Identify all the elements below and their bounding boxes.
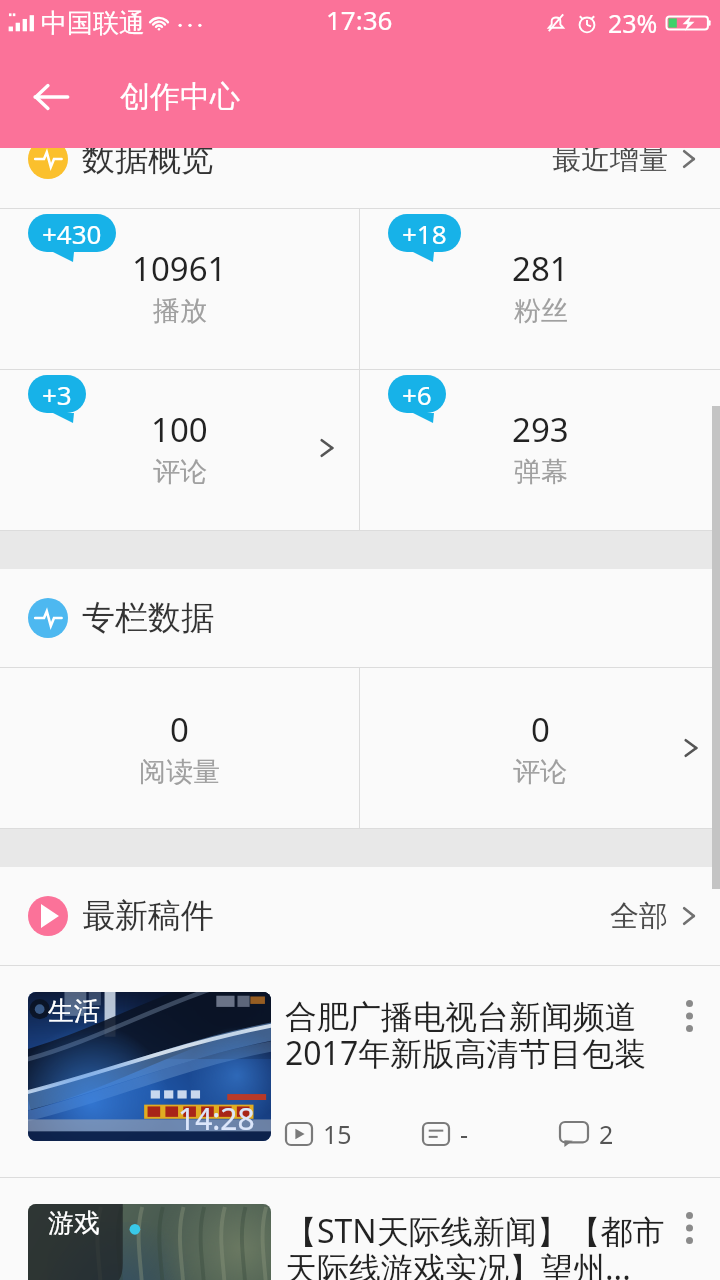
button[interactable]: 专栏数据	[0, 569, 720, 667]
staticText: +6	[402, 377, 432, 412]
staticText: 14:28	[178, 1098, 255, 1139]
staticText: +3	[42, 377, 72, 412]
button[interactable]: 游戏	[0, 1178, 720, 1280]
staticText: 0	[170, 707, 189, 752]
staticText: 合肥广播电视台新闻频道 2017年新版高清节目包装	[285, 997, 647, 1075]
staticText: 【STN天际线新闻】【都市 天际线游戏实况】望州...	[285, 1209, 665, 1280]
button[interactable]: More options	[672, 1204, 706, 1280]
button[interactable]: +430	[0, 209, 359, 369]
button[interactable]: +6	[360, 370, 720, 530]
staticText: 293	[512, 407, 569, 452]
staticText: 最近增量	[552, 141, 668, 178]
staticText: 创作中心	[120, 78, 240, 116]
staticText: 数据概览	[82, 138, 214, 180]
button[interactable]: 最新稿件	[0, 867, 720, 965]
staticText: 游戏	[48, 1207, 100, 1240]
button[interactable]: 0	[360, 668, 720, 828]
button[interactable]: 0	[0, 668, 359, 828]
staticText: -	[460, 1117, 469, 1151]
staticText: 粉丝	[514, 294, 568, 328]
button[interactable]: More options	[672, 992, 706, 1177]
staticText: 最新稿件	[82, 895, 214, 937]
staticText: 17:36	[326, 2, 393, 37]
button[interactable]: +18	[360, 209, 720, 369]
staticText: +18	[402, 216, 447, 251]
button[interactable]: Back	[20, 66, 82, 128]
staticText: 生活	[48, 995, 100, 1028]
staticText: 阅读量	[139, 755, 220, 789]
staticText: 播放	[153, 294, 207, 328]
staticText: 281	[512, 246, 569, 291]
staticText: 专栏数据	[82, 597, 214, 639]
button[interactable]: 数据概览	[0, 110, 720, 208]
staticText: 中国联通	[41, 7, 145, 40]
staticText: 2	[599, 1117, 614, 1151]
staticText: 100	[151, 407, 208, 452]
staticText: 评论	[513, 755, 567, 789]
staticText: 10961	[132, 246, 227, 291]
button[interactable]: 生活	[0, 966, 720, 1177]
staticText: 0	[531, 707, 550, 752]
staticText: +430	[42, 216, 102, 251]
button[interactable]: +3	[0, 370, 359, 530]
staticText: 15	[323, 1117, 352, 1151]
staticText: 23%	[608, 6, 658, 40]
staticText: 评论	[153, 455, 207, 489]
staticText: 弹幕	[514, 455, 568, 489]
staticText: 全部	[610, 898, 668, 935]
